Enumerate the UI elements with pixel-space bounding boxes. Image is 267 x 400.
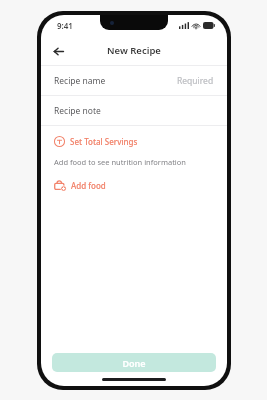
staticText: Recipe name — [54, 75, 106, 87]
button[interactable]: Back — [46, 39, 70, 63]
staticText: New Recipe — [107, 44, 161, 57]
staticText: Add food to see nutrition information — [54, 157, 186, 167]
staticText: 9:41 — [57, 20, 73, 31]
button[interactable]: Set Total Servings — [41, 132, 227, 151]
staticText: Done — [122, 357, 146, 369]
staticText: Required — [177, 75, 214, 87]
button[interactable]: Add food — [41, 176, 119, 194]
button[interactable]: Recipe name — [41, 66, 227, 95]
button[interactable]: Recipe note — [41, 96, 227, 125]
staticText: Add food — [71, 180, 106, 191]
button[interactable]: Done — [52, 353, 216, 372]
staticText: Set Total Servings — [70, 136, 138, 147]
staticText: Recipe note — [54, 105, 101, 117]
